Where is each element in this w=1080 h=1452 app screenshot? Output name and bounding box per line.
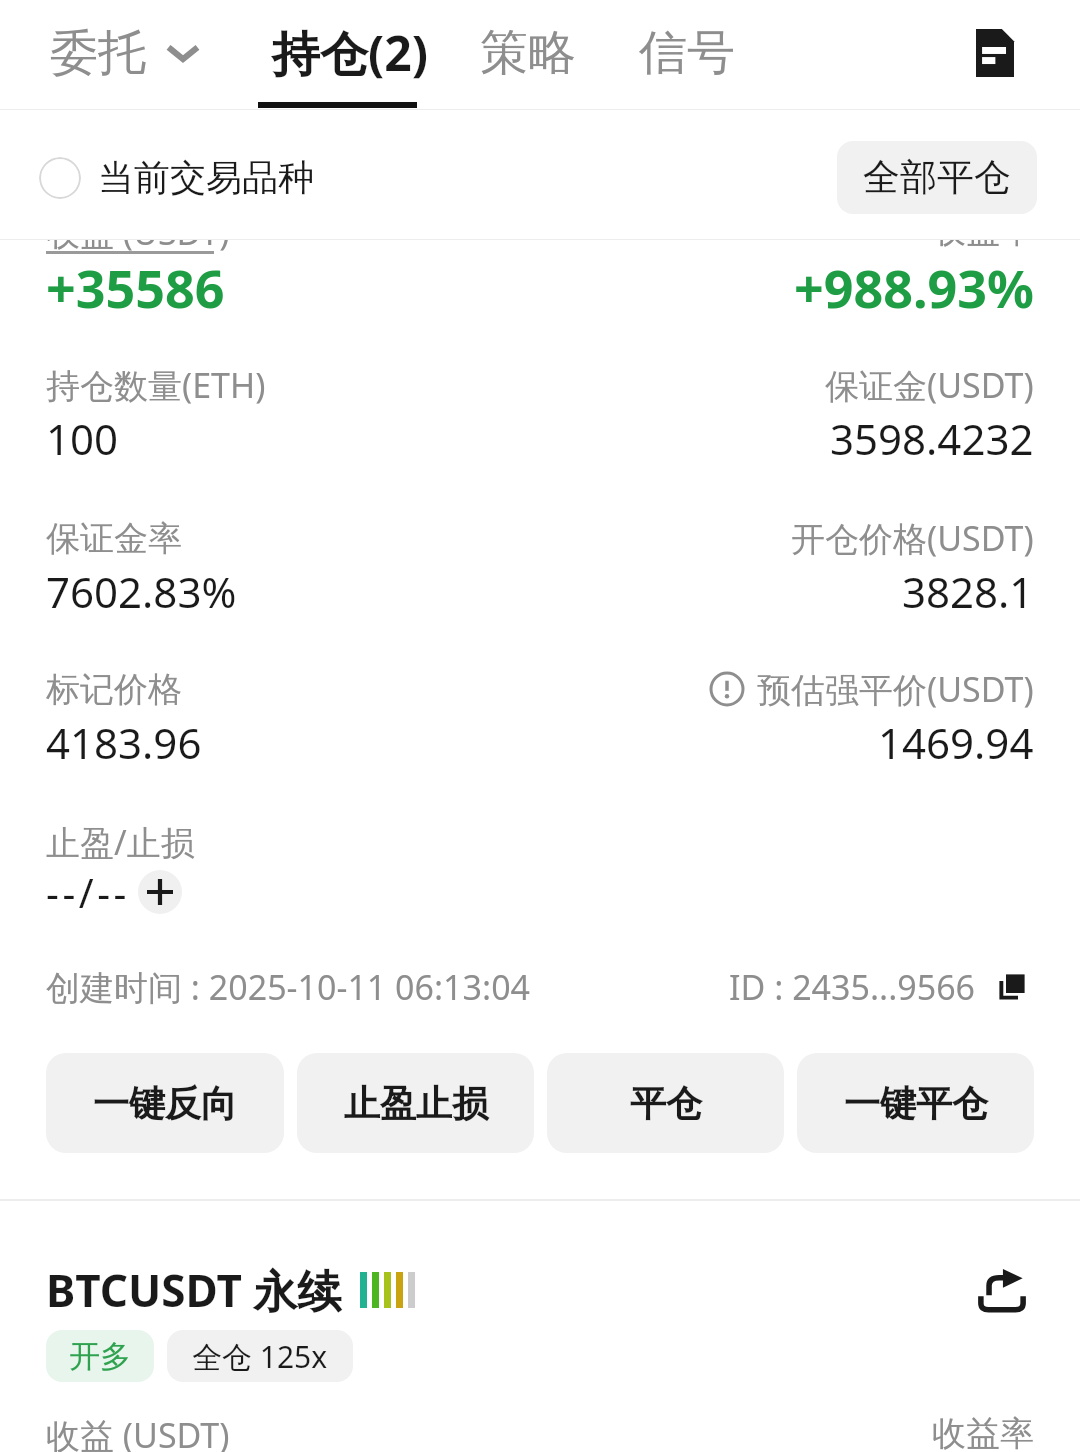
staticText: 委托 bbox=[50, 23, 146, 83]
button[interactable]: 策略 bbox=[480, 11, 576, 95]
button[interactable]: 当前交易品种 bbox=[39, 147, 314, 208]
staticText: 100 bbox=[46, 410, 119, 467]
button[interactable]: Add take profit and stop loss bbox=[138, 870, 182, 914]
staticText: 开仓价格(USDT) bbox=[791, 515, 1034, 561]
staticText: 当前交易品种 bbox=[98, 155, 314, 200]
staticText: +35586 bbox=[46, 252, 225, 323]
staticText: 收益率 bbox=[932, 209, 1034, 252]
button[interactable]: BTCUSDT 永续 bbox=[46, 1260, 415, 1320]
staticText: 信号 bbox=[639, 23, 735, 83]
staticText: 保证金(USDT) bbox=[825, 362, 1034, 408]
staticText: 收益率 bbox=[932, 1412, 1034, 1452]
staticText: 4183.96 bbox=[46, 714, 202, 771]
staticText: 止盈止损 bbox=[344, 1081, 488, 1126]
staticText: 开多 bbox=[69, 1337, 131, 1376]
staticText: 创建时间 : 2025-10-11 06:13:04 bbox=[46, 964, 531, 1010]
staticText: +988.93% bbox=[794, 252, 1034, 323]
staticText: 一键平仓 bbox=[844, 1081, 988, 1126]
button[interactable]: 一键反向 bbox=[46, 1053, 284, 1153]
staticText: 一键反向 bbox=[93, 1081, 237, 1126]
staticText: 3828.1 bbox=[902, 563, 1034, 620]
staticText: ID : 2435...9566 bbox=[729, 964, 976, 1010]
staticText: 策略 bbox=[480, 23, 576, 83]
button[interactable]: Order history bbox=[956, 14, 1034, 92]
staticText: 止盈/止损 bbox=[46, 819, 195, 865]
button[interactable]: 信号 bbox=[639, 11, 735, 95]
button[interactable]: 持仓(2) bbox=[272, 8, 429, 98]
staticText: 1469.94 bbox=[878, 714, 1034, 771]
button[interactable]: Share bbox=[970, 1258, 1034, 1322]
staticText: 持仓数量(ETH) bbox=[46, 362, 266, 408]
staticText: 全仓 125x bbox=[192, 1336, 328, 1377]
button[interactable]: 开多 bbox=[46, 1330, 154, 1382]
staticText: 7602.83% bbox=[46, 563, 237, 620]
staticText: BTCUSDT 永续 bbox=[46, 1260, 342, 1320]
staticText: 3598.4232 bbox=[830, 410, 1034, 467]
staticText: 标记价格 bbox=[46, 668, 182, 711]
staticText: 预估强平价(USDT) bbox=[757, 666, 1034, 712]
button[interactable]: Copy ID bbox=[990, 965, 1034, 1009]
button[interactable]: 平仓 bbox=[547, 1053, 784, 1153]
button[interactable]: 一键平仓 bbox=[797, 1053, 1034, 1153]
button[interactable]: 全部平仓 bbox=[837, 141, 1037, 214]
staticText: 收益 (USDT) bbox=[46, 209, 230, 255]
staticText: --/-- bbox=[46, 865, 138, 919]
button[interactable]: 止盈止损 bbox=[297, 1053, 534, 1153]
staticText: 保证金率 bbox=[46, 517, 182, 560]
staticText: 平仓 bbox=[630, 1081, 702, 1126]
staticText: 持仓(2) bbox=[272, 20, 429, 86]
staticText: 全部平仓 bbox=[863, 154, 1011, 201]
button[interactable]: 委托 bbox=[50, 11, 202, 95]
button[interactable]: 全仓 125x bbox=[167, 1330, 353, 1382]
staticText: 收益 (USDT) bbox=[46, 1412, 230, 1452]
